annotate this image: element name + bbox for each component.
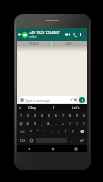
staticText: - <box>55 121 57 126</box>
staticText: @ <box>19 121 23 126</box>
button[interactable]: Voice call <box>71 28 78 41</box>
staticText: 123 <box>20 139 25 143</box>
staticText: BLOCK <box>29 42 39 46</box>
button[interactable]: @ <box>17 119 24 127</box>
button[interactable]: Record voice message <box>79 97 85 103</box>
staticText: 4 <box>41 113 43 118</box>
button[interactable]: Settings <box>17 104 22 111</box>
staticText: online <box>29 35 37 39</box>
staticText: . <box>71 138 72 143</box>
staticText: # <box>26 121 29 126</box>
staticText: * <box>30 129 32 134</box>
staticText: 5 <box>48 113 50 118</box>
staticText: Type a message <box>25 98 50 102</box>
button[interactable]: Okay <box>22 104 43 111</box>
button[interactable]: & <box>45 119 52 127</box>
button[interactable]: ; <box>55 127 62 136</box>
staticText: 6 <box>55 113 57 118</box>
button[interactable]: Attach <box>70 98 73 101</box>
button[interactable]: BLOCK <box>17 41 51 46</box>
button[interactable]: $ <box>31 119 38 127</box>
button[interactable]: _ <box>38 119 45 127</box>
staticText: 0 <box>83 113 85 118</box>
button[interactable]: Back <box>17 28 22 41</box>
button[interactable]: Emoji <box>28 136 35 145</box>
button[interactable]: 8 <box>66 111 73 119</box>
button[interactable]: Home <box>41 145 64 152</box>
staticText: : <box>51 129 52 134</box>
button[interactable]: Recent apps <box>64 145 87 152</box>
staticText: 1 <box>20 113 22 118</box>
staticText: 3 <box>34 113 36 118</box>
staticText: ) <box>76 121 78 126</box>
staticText: ! <box>65 129 66 134</box>
button[interactable]: 0 <box>80 111 87 119</box>
button[interactable]: 4 <box>38 111 45 119</box>
button[interactable]: # <box>24 119 31 127</box>
button[interactable]: ADD <box>52 41 87 46</box>
button[interactable]: Backspace <box>76 127 87 136</box>
button[interactable]: 7 <box>59 111 66 119</box>
staticText: + <box>62 121 64 126</box>
button[interactable]: ) <box>73 119 80 127</box>
staticText: ' <box>44 129 45 134</box>
button[interactable]: More symbols <box>17 127 27 136</box>
button[interactable]: 3 <box>31 111 38 119</box>
button[interactable]: Enter <box>75 136 87 145</box>
staticText: I <box>53 105 55 110</box>
button[interactable]: Type a message <box>19 96 78 103</box>
button[interactable]: 2 <box>24 111 31 119</box>
staticText: _ <box>41 121 43 126</box>
button[interactable]: . <box>68 136 75 145</box>
button[interactable]: Video call <box>63 28 71 41</box>
staticText: ; <box>58 129 59 134</box>
staticText: +49 1523 1234567 <box>29 30 60 35</box>
button[interactable]: More options <box>78 28 83 41</box>
staticText: ADD <box>66 42 73 46</box>
staticText: / <box>83 121 85 126</box>
button[interactable]: / <box>80 119 87 127</box>
button[interactable]: I <box>43 104 65 111</box>
button[interactable]: - <box>52 119 59 127</box>
button[interactable]: 9 <box>73 111 80 119</box>
button[interactable]: +49 1523 1234567 <box>29 28 63 41</box>
staticText: $ <box>34 121 36 126</box>
button[interactable]: 123 <box>17 136 28 145</box>
staticText: 8 <box>69 113 71 118</box>
button[interactable]: " <box>34 127 41 136</box>
staticText: Okay <box>28 105 37 110</box>
button[interactable]: 5 <box>45 111 52 119</box>
button[interactable]: + <box>59 119 66 127</box>
button[interactable]: Let's <box>65 104 87 111</box>
staticText: ? <box>72 129 74 134</box>
staticText: 9 <box>76 113 78 118</box>
button[interactable]: ' <box>41 127 48 136</box>
staticText: Let's <box>72 105 80 110</box>
button[interactable]: : <box>48 127 55 136</box>
staticText: & <box>47 121 50 126</box>
button[interactable]: ( <box>66 119 73 127</box>
button[interactable]: Contact photo <box>22 32 28 38</box>
button[interactable]: ! <box>62 127 69 136</box>
staticText: ( <box>69 121 71 126</box>
button[interactable]: 6 <box>52 111 59 119</box>
staticText: =\< <box>20 130 25 134</box>
button[interactable]: Camera <box>74 98 77 101</box>
staticText: " <box>37 129 39 134</box>
button[interactable]: Back <box>17 145 41 152</box>
button[interactable]: 1 <box>17 111 24 119</box>
button[interactable]: ? <box>69 127 76 136</box>
staticText: 7 <box>62 113 64 118</box>
button[interactable]: * <box>27 127 34 136</box>
staticText: 2 <box>27 113 29 118</box>
